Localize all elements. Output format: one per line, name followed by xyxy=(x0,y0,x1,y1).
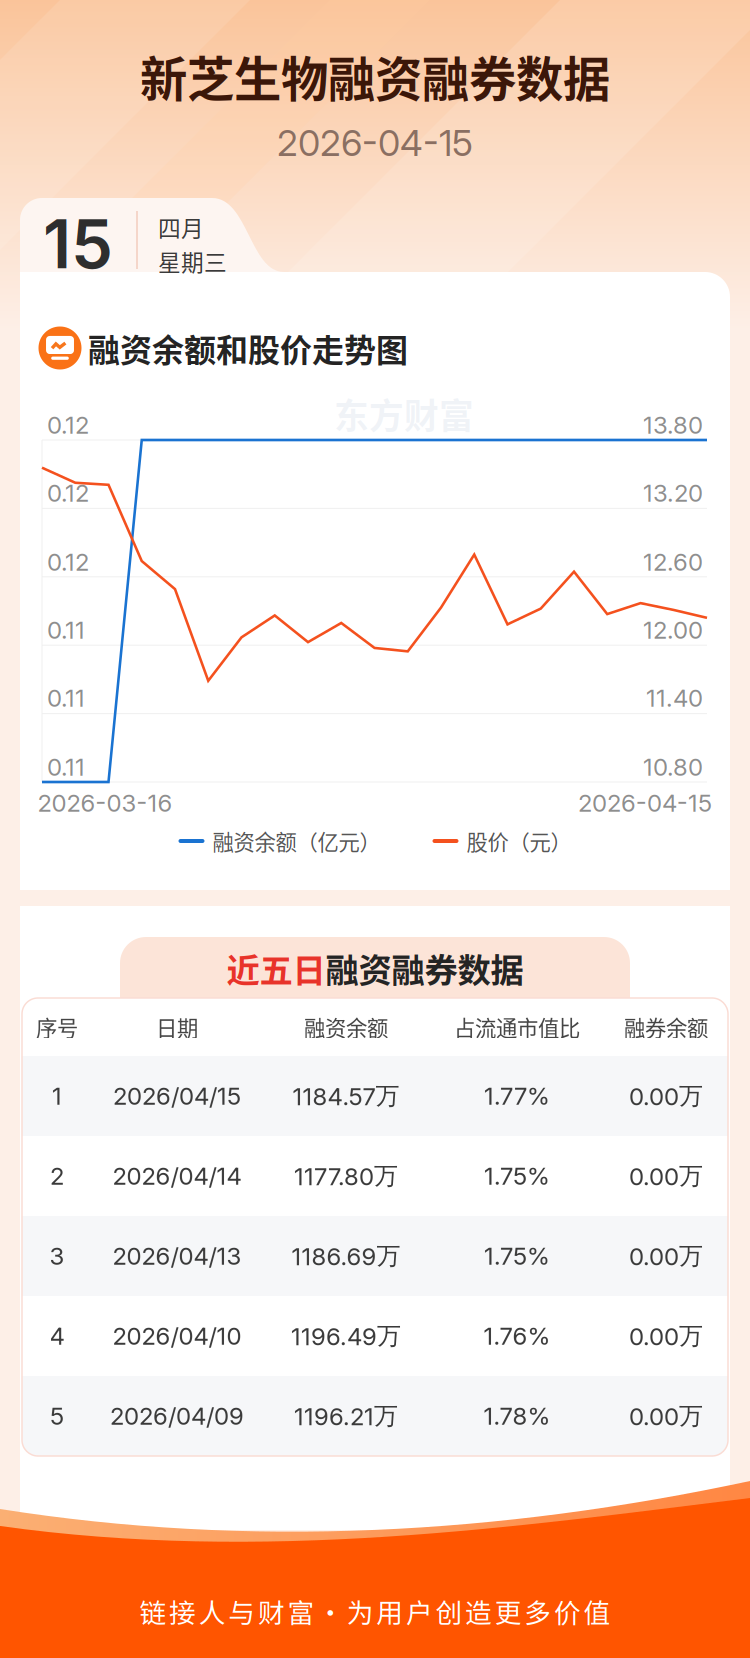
staticText: 2026-03-16 xyxy=(37,788,172,817)
staticText: 12.00 xyxy=(643,615,703,644)
staticText: 13.20 xyxy=(643,478,703,507)
staticText: 0.11 xyxy=(47,752,85,781)
staticText: 1.75% xyxy=(484,1161,550,1190)
staticText: 链接人与财富·为用户创造更多价值 xyxy=(139,1592,610,1630)
staticText: 4 xyxy=(49,1321,64,1350)
staticText: 东方财富 xyxy=(334,389,474,439)
staticText: 新芝生物融资融券数据 xyxy=(140,42,610,110)
staticText: 15 xyxy=(43,204,113,284)
staticText: 1196.21万 xyxy=(294,1401,398,1431)
staticText: 0.11 xyxy=(47,683,85,712)
staticText: 0.00万 xyxy=(629,1241,703,1271)
staticText: 13.80 xyxy=(643,410,703,439)
staticText: 5 xyxy=(50,1401,64,1430)
staticText: 日期 xyxy=(156,1012,198,1042)
staticText: 1 xyxy=(52,1081,62,1110)
staticText: 序号 xyxy=(36,1012,78,1042)
staticText: 0.00万 xyxy=(629,1081,703,1111)
staticText: 融资余额 xyxy=(304,1012,388,1042)
staticText: 11.40 xyxy=(646,683,703,712)
staticText: 2026/04/10 xyxy=(112,1321,241,1350)
staticText: 2026/04/09 xyxy=(110,1401,244,1430)
staticText: 2026-04-15 xyxy=(277,121,473,165)
staticText: 2026/04/14 xyxy=(112,1161,241,1190)
staticText: 0.12 xyxy=(47,410,89,439)
staticText: 0.12 xyxy=(47,547,89,576)
staticText: 1.76% xyxy=(483,1321,550,1350)
staticText: 1.77% xyxy=(484,1081,550,1110)
staticText: 融资融券数据 xyxy=(325,944,523,992)
staticText: 近五日 xyxy=(226,944,325,992)
staticText: 1177.80万 xyxy=(294,1161,398,1191)
staticText: 0.12 xyxy=(47,478,89,507)
staticText: 2 xyxy=(50,1161,64,1190)
staticText: 0.00万 xyxy=(629,1321,703,1351)
staticText: 1196.49万 xyxy=(291,1321,401,1351)
staticText: 融资余额（亿元） xyxy=(212,826,380,856)
staticText: 2026/04/13 xyxy=(112,1241,241,1270)
staticText: 1.78% xyxy=(483,1401,550,1430)
staticText: 3 xyxy=(49,1241,64,1270)
staticText: 占流通市值比 xyxy=(454,1012,580,1042)
staticText: 0.11 xyxy=(47,615,85,644)
staticText: 星期三 xyxy=(158,245,227,277)
staticText: 12.60 xyxy=(643,547,703,576)
staticText: 股价（元） xyxy=(466,826,571,856)
staticText: 融券余额 xyxy=(624,1012,708,1042)
staticText: 融资余额和股价走势图 xyxy=(88,325,408,371)
staticText: 0.00万 xyxy=(629,1161,703,1191)
staticText: 2026/04/15 xyxy=(113,1081,241,1110)
staticText: 10.80 xyxy=(643,752,703,781)
staticText: 0.00万 xyxy=(629,1401,703,1431)
staticText: 1.75% xyxy=(484,1241,550,1270)
staticText: 1186.69万 xyxy=(291,1241,400,1271)
staticText: 四月 xyxy=(158,211,204,243)
staticText: 1184.57万 xyxy=(292,1081,399,1111)
staticText: 2026-04-15 xyxy=(578,788,712,817)
